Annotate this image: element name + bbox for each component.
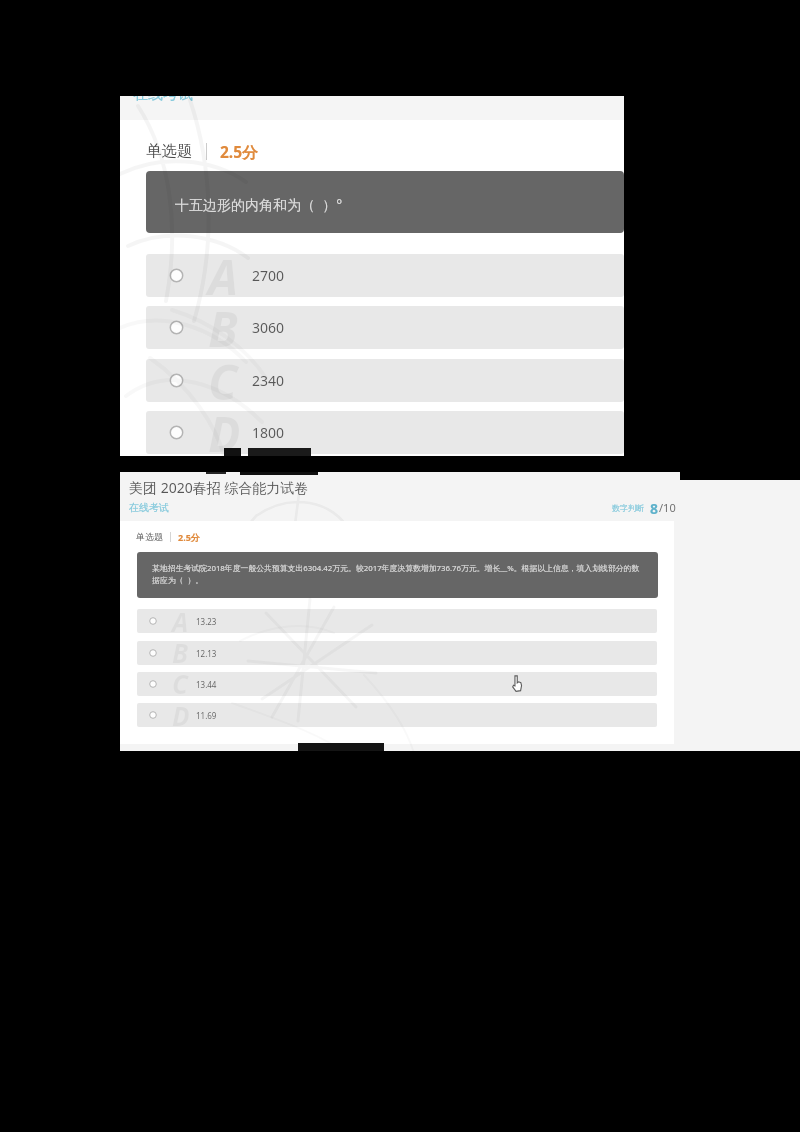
button[interactable]: 11.69 [137, 703, 657, 727]
staticText: 8 [650, 499, 659, 515]
staticText: D [172, 698, 190, 733]
staticText: B [208, 296, 238, 361]
staticText: 单选题 [146, 141, 193, 161]
staticText: 在线考试 [129, 501, 169, 514]
staticText: 1800 [252, 423, 285, 442]
staticText: 在线考试 [133, 96, 193, 104]
staticText: 十五边形的内角和为（ ）° [175, 195, 343, 214]
button[interactable]: 2700 [146, 254, 624, 297]
staticText: A [208, 244, 239, 309]
staticText: A [172, 604, 189, 639]
staticText: D [208, 401, 241, 456]
staticText: B [172, 635, 189, 670]
staticText: 13.44 [196, 679, 217, 690]
staticText: 3060 [252, 318, 285, 337]
staticText: C [172, 666, 188, 701]
staticText: 数字判断 [612, 503, 644, 513]
button[interactable]: 13.23 [137, 609, 657, 633]
staticText: 美团 2020春招 综合能力试卷 [129, 478, 309, 497]
staticText: 2340 [252, 371, 285, 390]
other: Pointer [511, 675, 523, 692]
button[interactable]: 3060 [146, 306, 624, 349]
staticText: 2.5分 [220, 141, 258, 161]
staticText: C [208, 349, 238, 414]
button[interactable]: 2340 [146, 359, 624, 402]
staticText: /10 [659, 500, 676, 515]
staticText: 2700 [252, 266, 285, 285]
staticText: 13.23 [196, 616, 217, 627]
staticText: 12.13 [196, 648, 217, 659]
button[interactable]: 12.13 [137, 641, 657, 665]
staticText: 某地招生考试院2018年度一般公共预算支出6304.42万元。较2017年度决算… [152, 563, 641, 586]
button[interactable]: 13.44 [137, 672, 657, 696]
button[interactable]: 1800 [146, 411, 624, 454]
staticText: 2.5分 [178, 531, 200, 543]
staticText: 单选题 [136, 531, 163, 542]
staticText: 11.69 [196, 710, 217, 721]
